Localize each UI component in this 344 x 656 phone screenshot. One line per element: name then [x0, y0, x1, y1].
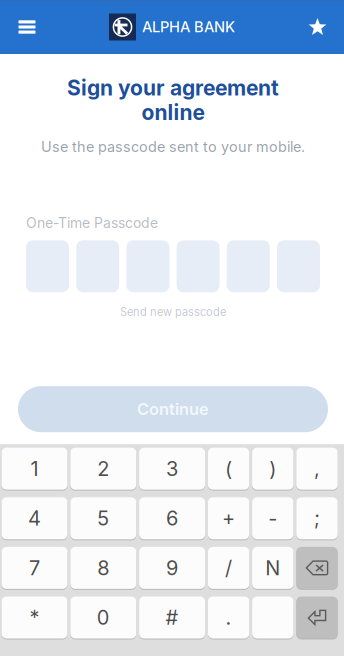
button[interactable]: /	[208, 546, 249, 589]
staticText: 3	[166, 457, 178, 481]
staticText: Send new passcode	[120, 305, 226, 319]
button[interactable]: N	[252, 546, 293, 589]
staticText: -	[268, 506, 277, 530]
button[interactable]: -	[252, 497, 293, 540]
staticText: One-Time Passcode	[26, 214, 158, 231]
staticText: 4	[28, 506, 41, 530]
staticText: 9	[166, 556, 178, 580]
staticText: 7	[29, 556, 40, 580]
button[interactable]: Continue	[18, 386, 328, 432]
button[interactable]	[252, 596, 293, 639]
staticText: (	[225, 457, 232, 481]
button[interactable]: #	[139, 596, 205, 639]
staticText: +	[222, 506, 235, 530]
button[interactable]: 9	[139, 546, 205, 589]
staticText: Continue	[137, 399, 209, 419]
button[interactable]: Send new passcode	[108, 292, 238, 323]
button[interactable]: )	[252, 447, 293, 490]
staticText: 8	[97, 556, 109, 580]
staticText: online	[141, 99, 204, 125]
button[interactable]: Favourites	[291, 0, 344, 54]
button[interactable]: 3	[139, 447, 205, 490]
staticText: 1	[30, 457, 38, 481]
button[interactable]: +	[208, 497, 249, 540]
button[interactable]: .	[208, 596, 249, 639]
staticText: 5	[97, 506, 109, 530]
staticText: *	[29, 605, 39, 630]
staticText: #	[166, 605, 179, 630]
staticText: 2	[97, 457, 109, 481]
staticText: N	[265, 556, 280, 580]
button[interactable]	[296, 546, 338, 589]
button[interactable]: 7	[1, 546, 67, 589]
staticText: )	[269, 457, 276, 481]
button[interactable]: 8	[70, 546, 136, 589]
staticText: ,	[314, 457, 320, 481]
button[interactable]: 2	[70, 447, 136, 490]
staticText: 0	[97, 605, 110, 630]
button[interactable]: 6	[139, 497, 205, 540]
staticText: /	[225, 556, 232, 580]
staticText: 6	[166, 506, 178, 530]
staticText: ALPHA BANK	[142, 18, 235, 36]
button[interactable]: *	[1, 596, 67, 639]
button[interactable]: 0	[70, 596, 136, 639]
button[interactable]: ;	[296, 497, 338, 540]
staticText: .	[226, 605, 232, 630]
button[interactable]: 5	[70, 497, 136, 540]
button[interactable]: ,	[296, 447, 338, 490]
button[interactable]	[296, 596, 338, 639]
button[interactable]: 4	[1, 497, 67, 540]
staticText: Sign your agreement	[67, 75, 279, 100]
button[interactable]: 1	[1, 447, 67, 490]
staticText: Use the passcode sent to your mobile.	[41, 138, 305, 155]
button[interactable]: Menu	[0, 0, 54, 54]
staticText: ;	[314, 506, 320, 530]
button[interactable]: (	[208, 447, 249, 490]
